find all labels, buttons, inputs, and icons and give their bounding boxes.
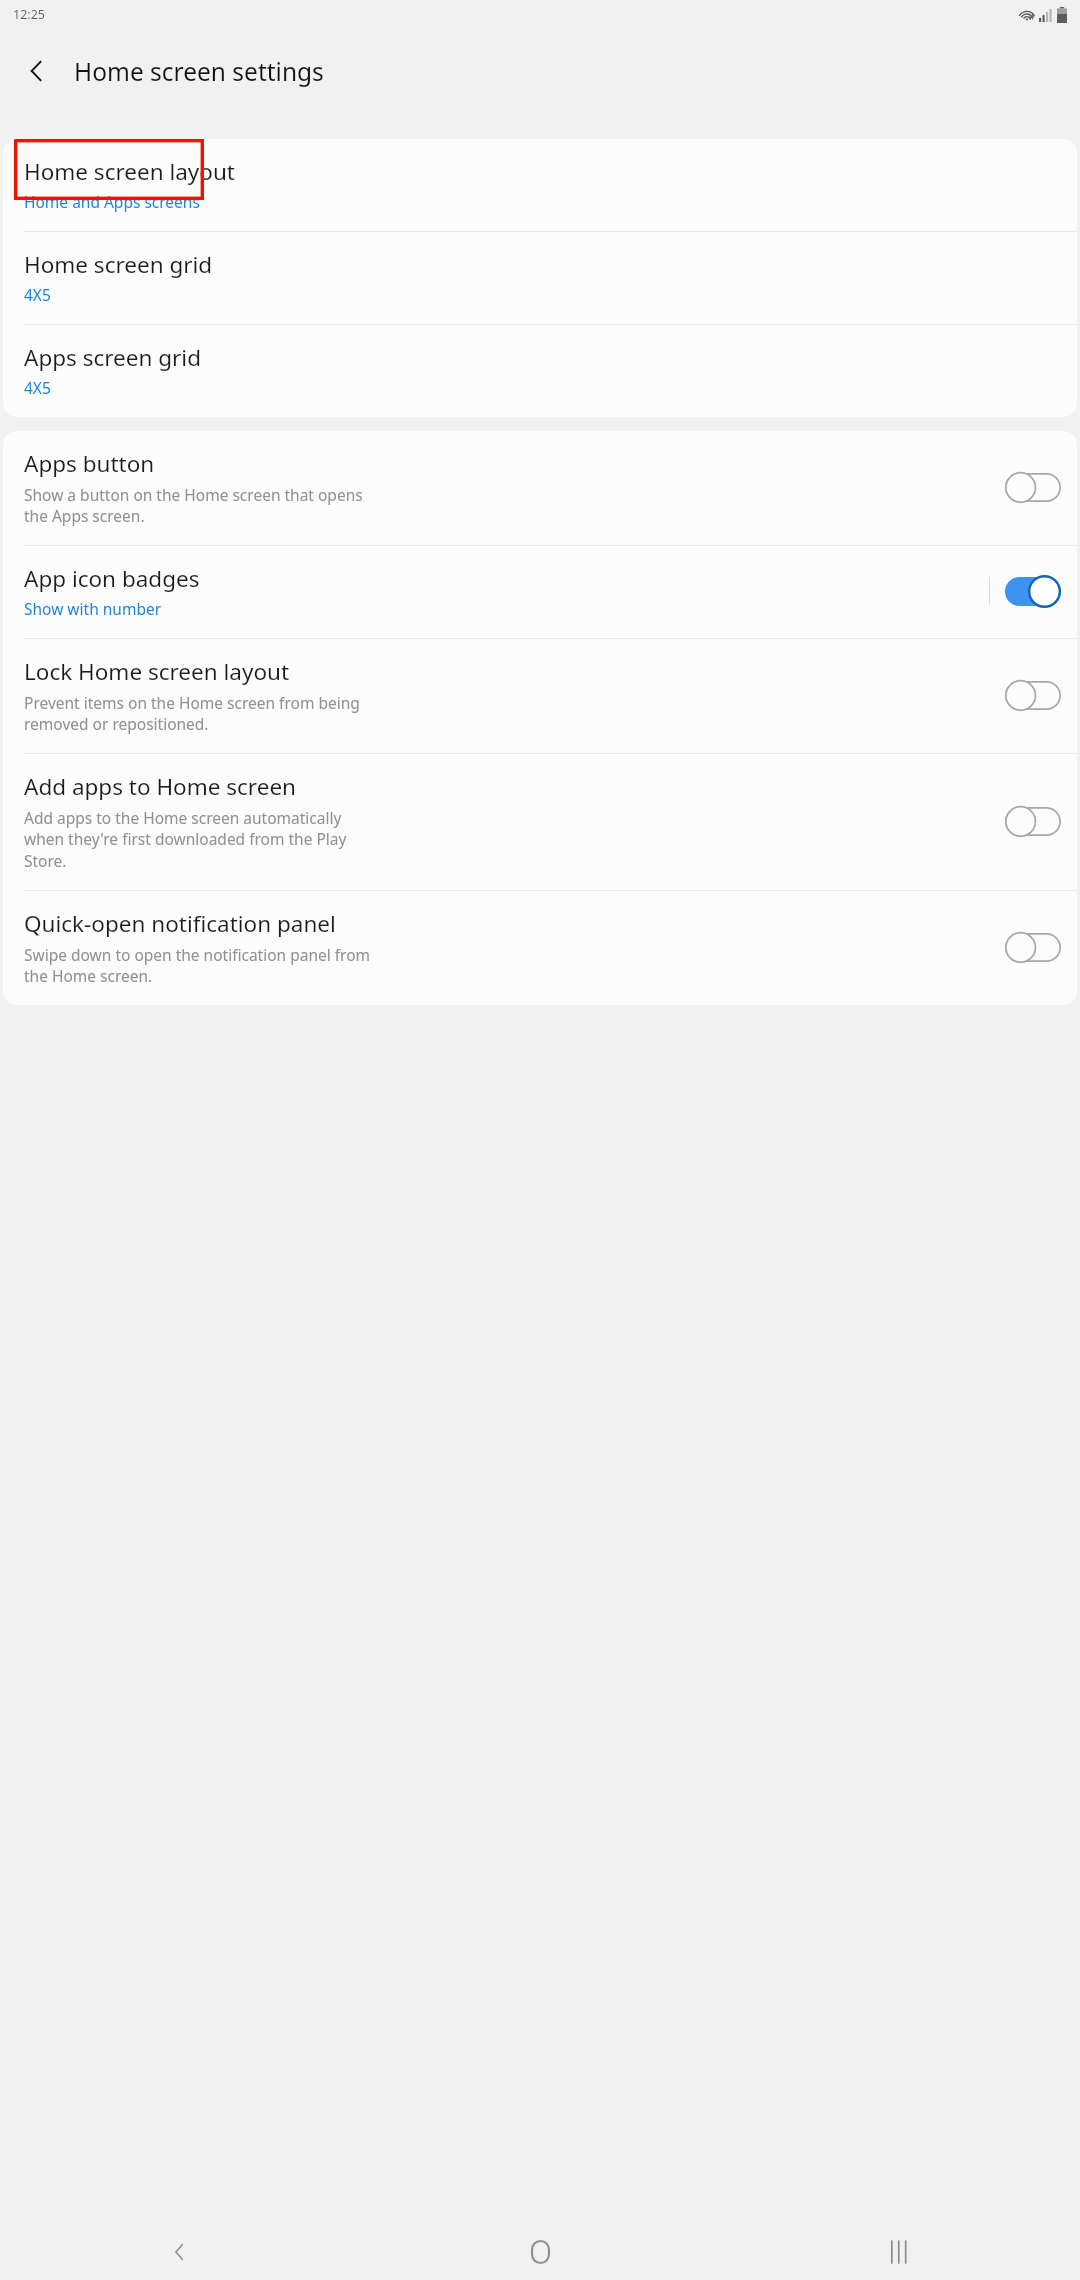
staticText: Prevent items on the Home screen from be… bbox=[24, 692, 360, 734]
button[interactable]: Home screen layout bbox=[3, 139, 1077, 231]
button[interactable]: Home bbox=[360, 2224, 720, 2280]
staticText: Show with number bbox=[24, 598, 162, 619]
staticText: Home screen layout bbox=[24, 156, 235, 187]
staticText: Apps button bbox=[24, 448, 155, 479]
button[interactable]: Quick-open notification panel bbox=[3, 891, 1077, 1005]
button[interactable]: App icon badges bbox=[3, 546, 1077, 638]
button[interactable]: Apps button bbox=[3, 431, 1077, 545]
staticText: Quick-open notification panel bbox=[24, 908, 336, 939]
button[interactable]: Off bbox=[1005, 679, 1061, 712]
staticText: Swipe down to open the notification pane… bbox=[24, 944, 371, 986]
staticText: Add apps to the Home screen automaticall… bbox=[24, 807, 347, 871]
button[interactable]: Apps screen grid bbox=[3, 325, 1077, 417]
button[interactable]: Add apps to Home screen bbox=[3, 754, 1077, 890]
button[interactable]: Off bbox=[1005, 931, 1061, 964]
button[interactable]: Off bbox=[1005, 805, 1061, 838]
staticText: Apps screen grid bbox=[24, 342, 202, 373]
staticText: Add apps to Home screen bbox=[24, 771, 296, 802]
staticText: 4X5 bbox=[24, 284, 51, 305]
button[interactable]: Navigate up bbox=[0, 34, 74, 108]
staticText: Home screen grid bbox=[24, 249, 213, 280]
staticText: 12:25 bbox=[13, 6, 45, 23]
button[interactable]: Off bbox=[1005, 471, 1061, 504]
button[interactable]: Lock Home screen layout bbox=[3, 639, 1077, 753]
staticText: Lock Home screen layout bbox=[24, 656, 290, 687]
button[interactable]: Recent apps bbox=[720, 2224, 1080, 2280]
staticText: Home and Apps screens bbox=[24, 191, 200, 212]
staticText: 4X5 bbox=[24, 377, 51, 398]
staticText: Show a button on the Home screen that op… bbox=[24, 484, 363, 526]
staticText: App icon badges bbox=[24, 563, 200, 594]
button[interactable]: On bbox=[1005, 575, 1061, 608]
staticText: Home screen settings bbox=[74, 55, 324, 88]
button[interactable]: Back bbox=[0, 2224, 360, 2280]
button[interactable]: Home screen grid bbox=[3, 232, 1077, 324]
